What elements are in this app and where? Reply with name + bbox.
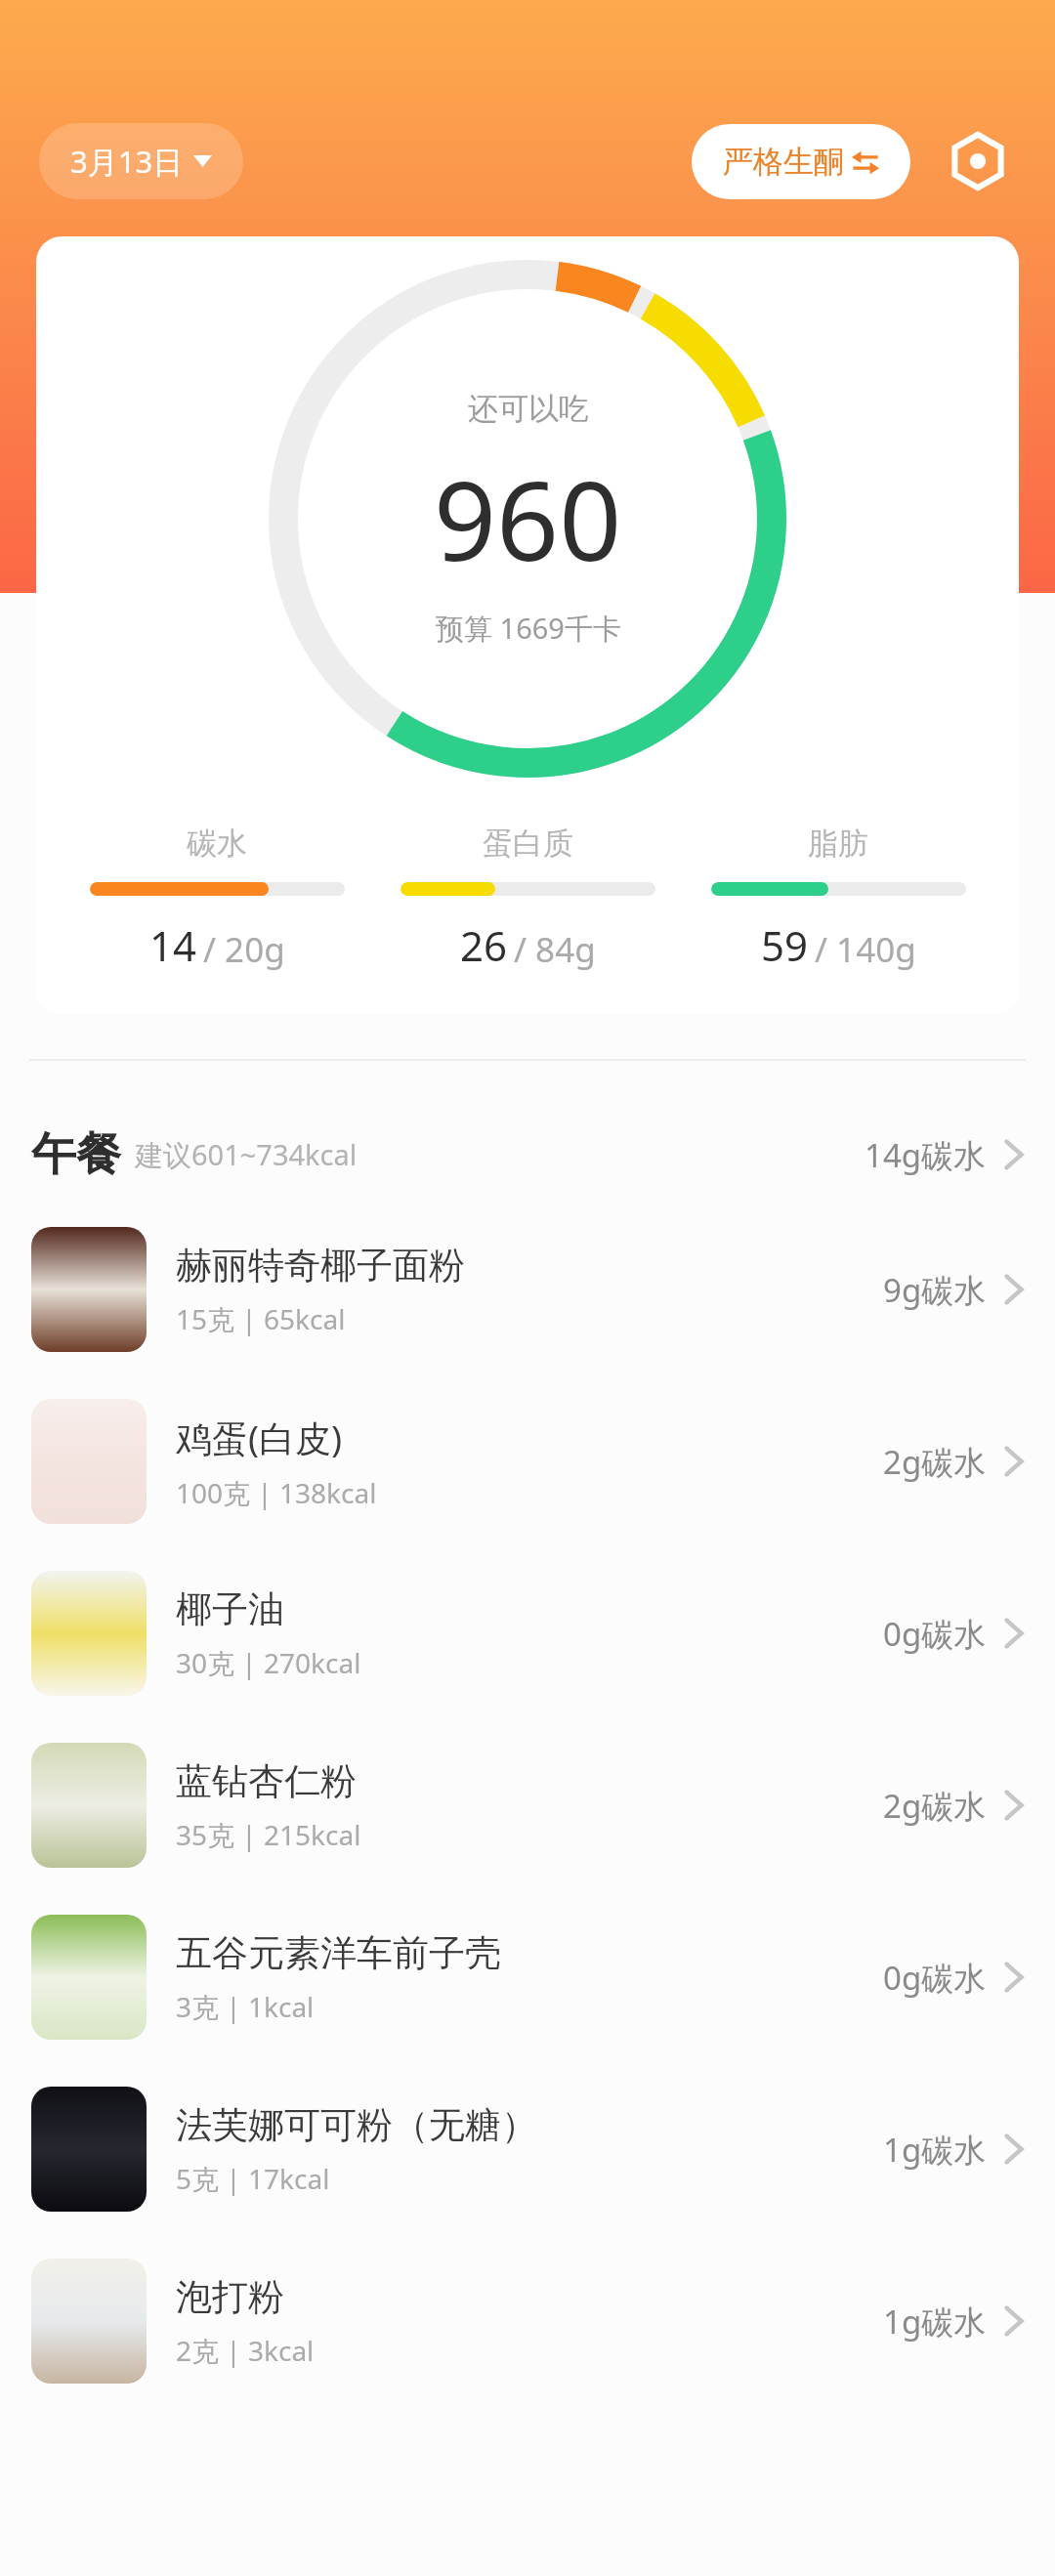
- staticText: 五谷元素洋车前子壳: [176, 1930, 501, 1976]
- staticText: 碳水: [187, 824, 247, 863]
- button[interactable]: Settings: [940, 123, 1016, 199]
- button[interactable]: 鸡蛋(白皮): [0, 1375, 1055, 1547]
- staticText: 鸡蛋(白皮): [176, 1413, 343, 1462]
- button[interactable]: 椰子油: [0, 1547, 1055, 1719]
- button[interactable]: 午餐: [0, 1106, 1055, 1204]
- button[interactable]: 3月13日: [39, 123, 243, 199]
- staticText: 9g碳水: [883, 1268, 987, 1312]
- staticText: 35克 | 215kcal: [176, 1816, 361, 1853]
- button[interactable]: 赫丽特奇椰子面粉: [0, 1204, 1055, 1375]
- staticText: 1g碳水: [883, 2128, 987, 2172]
- staticText: 3月13日: [70, 141, 184, 182]
- staticText: / 140g: [815, 926, 916, 973]
- staticText: 5克 | 17kcal: [176, 2160, 330, 2197]
- staticText: 蛋白质: [483, 824, 573, 863]
- staticText: 3克 | 1kcal: [176, 1988, 315, 2025]
- staticText: / 84g: [514, 926, 596, 973]
- staticText: 椰子油: [176, 1586, 284, 1632]
- staticText: 15克 | 65kcal: [176, 1300, 346, 1337]
- staticText: 严格生酮: [723, 143, 844, 181]
- button[interactable]: 还可以吃: [36, 236, 1019, 1014]
- staticText: 1g碳水: [883, 2300, 987, 2344]
- staticText: 赫丽特奇椰子面粉: [176, 1243, 465, 1288]
- staticText: 蓝钻杏仁粉: [176, 1758, 357, 1804]
- staticText: 还可以吃: [468, 390, 589, 428]
- staticText: 100克 | 138kcal: [176, 1474, 377, 1511]
- staticText: 26: [460, 917, 508, 973]
- staticText: 午餐: [31, 1126, 121, 1183]
- staticText: 脂肪: [808, 824, 868, 863]
- staticText: 0g碳水: [883, 1612, 987, 1656]
- staticText: 960: [434, 443, 622, 593]
- button[interactable]: 五谷元素洋车前子壳: [0, 1891, 1055, 2063]
- staticText: 建议601~734kcal: [135, 1135, 358, 1174]
- staticText: 2g碳水: [883, 1784, 987, 1828]
- button[interactable]: 法芙娜可可粉（无糖）: [0, 2063, 1055, 2235]
- staticText: 法芙娜可可粉（无糖）: [176, 2102, 537, 2148]
- staticText: / 20g: [203, 926, 285, 973]
- staticText: 泡打粉: [176, 2274, 284, 2320]
- staticText: 预算 1669千卡: [436, 609, 621, 648]
- staticText: 30克 | 270kcal: [176, 1644, 361, 1681]
- staticText: 2g碳水: [883, 1440, 987, 1484]
- button[interactable]: 蓝钻杏仁粉: [0, 1719, 1055, 1891]
- staticText: 59: [761, 917, 809, 973]
- staticText: 2克 | 3kcal: [176, 2332, 315, 2369]
- staticText: 0g碳水: [883, 1956, 987, 2000]
- staticText: 14: [149, 917, 197, 973]
- staticText: 14g碳水: [865, 1133, 987, 1177]
- button[interactable]: 泡打粉: [0, 2235, 1055, 2407]
- button[interactable]: 严格生酮: [692, 124, 910, 199]
